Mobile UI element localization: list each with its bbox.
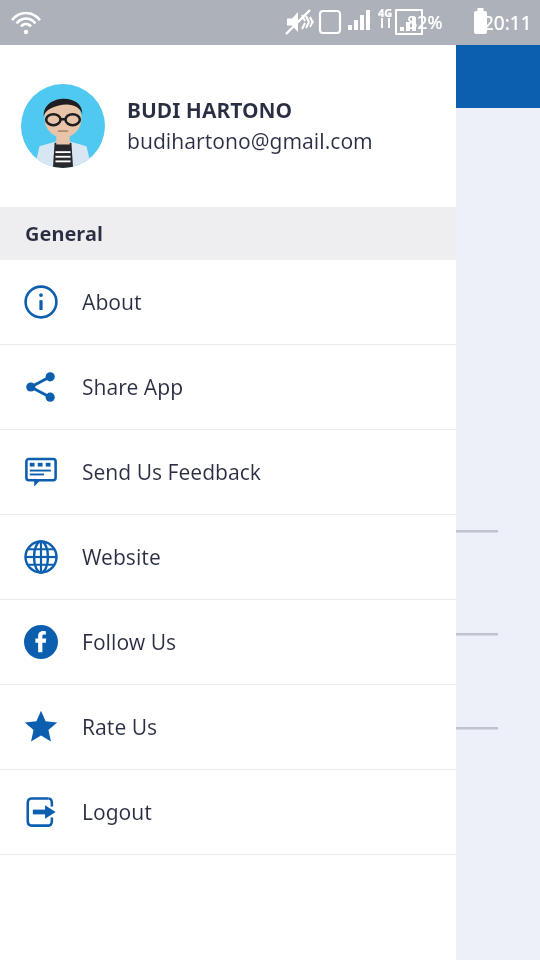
button[interactable]: Follow Us bbox=[0, 600, 456, 684]
staticText: Follow Us bbox=[82, 628, 177, 657]
staticText: Rate Us bbox=[82, 713, 158, 742]
other: Follow Us bbox=[24, 625, 58, 659]
button[interactable]: Send Us Feedback bbox=[0, 430, 456, 514]
staticText: General bbox=[25, 220, 103, 247]
other: Website bbox=[24, 540, 58, 574]
other: Send Us Feedback bbox=[24, 455, 58, 489]
other: Rate Us bbox=[24, 710, 58, 744]
other: About bbox=[24, 285, 58, 319]
button[interactable]: Website bbox=[0, 515, 456, 599]
other: Share App bbox=[24, 370, 58, 404]
staticText: BUDI HARTONO bbox=[127, 96, 293, 125]
button[interactable]: Rate Us bbox=[0, 685, 456, 769]
button[interactable]: Logout bbox=[0, 770, 456, 854]
other: Logout bbox=[24, 795, 58, 829]
button[interactable]: BUDI HARTONO bbox=[0, 45, 456, 207]
staticText: Send Us Feedback bbox=[82, 458, 262, 487]
button[interactable]: Share App bbox=[0, 345, 456, 429]
staticText: About bbox=[82, 288, 142, 317]
staticText: Logout bbox=[82, 798, 152, 827]
staticText: 82% bbox=[407, 10, 443, 35]
staticText: Website bbox=[82, 543, 161, 572]
staticText: Share App bbox=[82, 373, 184, 402]
staticText: 20:11 bbox=[483, 10, 532, 36]
staticText: budihartono@gmail.com bbox=[127, 127, 373, 156]
button[interactable]: About bbox=[0, 260, 456, 344]
staticText: 4G bbox=[378, 5, 393, 20]
